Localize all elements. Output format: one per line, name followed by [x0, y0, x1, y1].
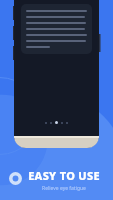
staticText: Relieve eye fatigue — [42, 185, 86, 192]
staticText: EASY TO USE — [28, 168, 100, 183]
button[interactable]: Eye protection — [9, 172, 22, 185]
button[interactable] — [21, 4, 92, 54]
